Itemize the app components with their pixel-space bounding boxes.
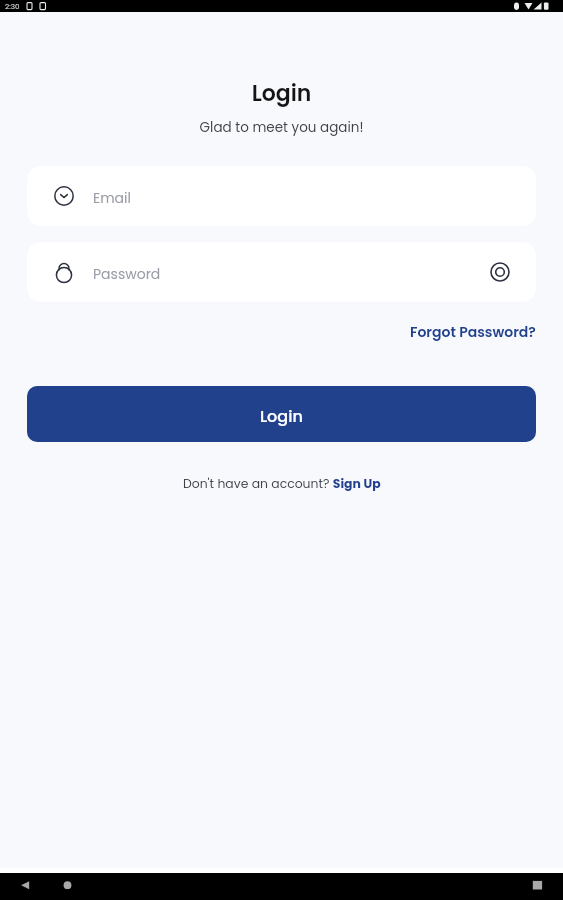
staticText: Login bbox=[260, 405, 303, 427]
staticText: Don't have an account? Sign Up bbox=[183, 475, 381, 492]
button[interactable]: Don't have an account? Sign Up bbox=[179, 471, 385, 496]
staticText: 2:30 bbox=[5, 1, 20, 11]
staticText: Glad to meet you again! bbox=[0, 118, 563, 137]
staticText: Password bbox=[93, 264, 161, 284]
button[interactable]: Password bbox=[27, 242, 536, 302]
button[interactable]: Login bbox=[27, 386, 536, 442]
staticText: Forgot Password? bbox=[410, 322, 536, 342]
button[interactable]: Show password bbox=[487, 259, 513, 285]
button[interactable]: Forgot Password? bbox=[406, 318, 540, 346]
staticText: Login bbox=[0, 78, 563, 109]
staticText: Email bbox=[93, 188, 131, 208]
button[interactable]: Email bbox=[27, 166, 536, 226]
